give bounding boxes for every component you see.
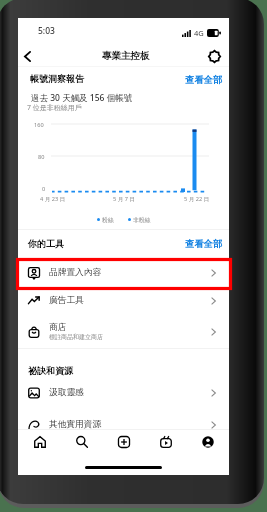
staticText: 廣告工具 xyxy=(49,295,84,306)
staticText: 汲取靈感 xyxy=(49,387,84,398)
staticText: 標註商品和建立商店 xyxy=(49,333,103,341)
button[interactable]: 其他實用資源 xyxy=(18,411,229,438)
staticText: 帳號洞察報告 xyxy=(30,73,84,84)
staticText: 品牌置入內容 xyxy=(49,267,102,278)
staticText: 5 月 7 日 xyxy=(113,195,135,203)
button[interactable]: Search xyxy=(70,430,94,454)
staticText: 5:03 xyxy=(38,25,55,37)
staticText: 其他實用資源 xyxy=(49,419,102,430)
button[interactable]: 商店 xyxy=(18,318,229,345)
staticText: 粉絲 xyxy=(102,216,114,223)
button[interactable]: 廣告工具 xyxy=(18,287,229,314)
button[interactable]: Reels xyxy=(154,430,178,454)
button[interactable]: Profile xyxy=(196,430,220,454)
staticText: 4 月 23 日 xyxy=(40,195,66,203)
staticText: 非粉絲 xyxy=(133,216,151,223)
staticText: 80 xyxy=(38,153,45,161)
staticText: 4G xyxy=(194,28,204,38)
staticText: 5 月 22 日 xyxy=(184,195,210,203)
button[interactable]: Home xyxy=(28,430,52,454)
staticText: 0 xyxy=(42,185,46,193)
staticText: 商店 xyxy=(49,322,67,333)
staticText: 你的工具 xyxy=(28,238,64,249)
button[interactable]: Settings xyxy=(201,44,227,68)
staticText: 祕訣和資源 xyxy=(28,365,73,376)
staticText: 專業主控板 xyxy=(102,50,150,62)
staticText: 過去 30 天觸及 156 個帳號 xyxy=(31,92,133,104)
button[interactable]: 查看全部 xyxy=(185,74,223,86)
button[interactable]: Back xyxy=(14,44,40,68)
staticText: 160 xyxy=(34,121,44,129)
button[interactable]: 汲取靈感 xyxy=(18,379,229,406)
staticText: 7 位是非粉絲用戶 xyxy=(27,103,82,113)
button[interactable]: 品牌置入內容 xyxy=(18,259,229,286)
button[interactable]: 查看全部 xyxy=(185,238,223,250)
button[interactable]: Create xyxy=(112,430,136,454)
